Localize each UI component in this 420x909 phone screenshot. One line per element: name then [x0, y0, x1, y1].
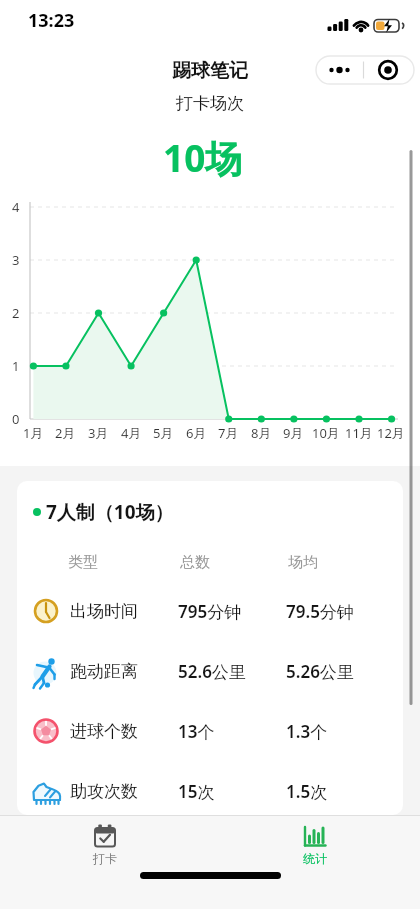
staticText: 出场时间: [70, 601, 138, 622]
staticText: 1月: [23, 424, 44, 442]
staticText: 打卡: [93, 851, 117, 866]
staticText: 跑动距离: [70, 661, 138, 682]
button[interactable]: [20, 763, 400, 819]
staticText: 13:23: [28, 8, 75, 33]
staticText: 4月: [121, 424, 142, 442]
staticText: 打卡场次: [176, 93, 244, 114]
staticText: 1.3个: [286, 720, 328, 743]
staticText: 2: [12, 304, 20, 322]
button[interactable]: [45, 817, 165, 869]
staticText: 1: [12, 357, 20, 375]
staticText: 0: [12, 410, 20, 428]
staticText: 15次: [178, 780, 215, 803]
staticText: 3月: [88, 424, 109, 442]
staticText: 10场: [163, 132, 243, 183]
staticText: 场均: [288, 553, 318, 572]
button[interactable]: [255, 817, 375, 869]
staticText: 79.5分钟: [286, 600, 354, 623]
staticText: 7人制（10场）: [46, 499, 174, 525]
staticText: 总数: [180, 553, 210, 572]
staticText: 8月: [251, 424, 272, 442]
staticText: 795分钟: [178, 600, 242, 623]
staticText: 3: [12, 251, 20, 269]
staticText: 6月: [186, 424, 207, 442]
staticText: 52.6公里: [178, 660, 246, 683]
staticText: 4: [12, 198, 20, 216]
staticText: 进球个数: [70, 721, 138, 742]
staticText: 7月: [218, 424, 239, 442]
staticText: 12月: [377, 424, 405, 442]
button[interactable]: [20, 703, 400, 759]
staticText: 5月: [153, 424, 174, 442]
staticText: 11月: [345, 424, 373, 442]
button[interactable]: [20, 583, 400, 639]
staticText: 助攻次数: [70, 781, 138, 802]
staticText: 9月: [283, 424, 304, 442]
button[interactable]: [316, 56, 414, 84]
button[interactable]: [20, 643, 400, 699]
staticText: 5.26公里: [286, 660, 354, 683]
staticText: 统计: [303, 851, 327, 866]
staticText: 13个: [178, 720, 215, 743]
staticText: 2月: [55, 424, 76, 442]
staticText: 1.5次: [286, 780, 328, 803]
staticText: 类型: [68, 553, 98, 572]
staticText: 10月: [312, 424, 340, 442]
staticText: 踢球笔记: [172, 59, 248, 83]
